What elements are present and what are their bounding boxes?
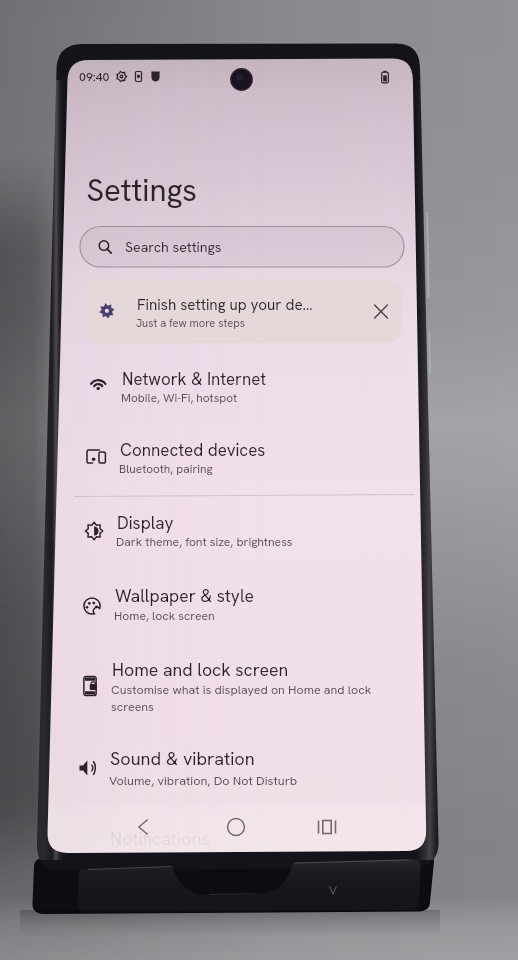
button[interactable] <box>0 0 518 960</box>
